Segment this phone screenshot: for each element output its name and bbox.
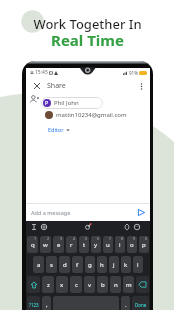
staticText: 7 <box>109 236 112 241</box>
staticText: Phil John <box>54 99 79 107</box>
button[interactable]: k <box>121 256 131 273</box>
staticText: y <box>94 241 98 249</box>
button[interactable]: j <box>109 256 119 273</box>
staticText: r <box>70 241 73 249</box>
button[interactable]: o <box>127 236 137 253</box>
button[interactable]: Add people <box>30 95 39 104</box>
button[interactable]: u <box>103 236 113 253</box>
button[interactable]: a <box>33 256 44 273</box>
staticText: Share <box>47 81 66 91</box>
staticText: 1 <box>34 236 37 241</box>
staticText: j <box>113 261 115 269</box>
button[interactable]: Send <box>136 207 147 218</box>
staticText: l <box>137 261 139 269</box>
button[interactable]: n <box>110 276 121 293</box>
staticText: k <box>124 261 128 269</box>
staticText: 91% <box>129 70 138 76</box>
button[interactable]: m <box>123 276 134 293</box>
staticText: 0 <box>145 236 148 241</box>
button[interactable]: q <box>27 236 38 253</box>
button[interactable]: x <box>56 276 68 293</box>
staticText: p <box>142 241 146 249</box>
button[interactable]: Text editing <box>28 221 39 232</box>
button[interactable]: f <box>72 256 83 273</box>
button[interactable]: t <box>79 236 89 253</box>
staticText: 2 <box>47 236 50 241</box>
button[interactable]: Editor <box>47 125 71 134</box>
staticText: P <box>45 100 49 107</box>
button[interactable]: Voice input <box>82 221 93 232</box>
staticText: . <box>125 301 127 309</box>
staticText: a <box>37 261 41 269</box>
staticText: g <box>88 261 92 269</box>
staticText: z <box>47 281 50 289</box>
button[interactable]: . <box>121 296 130 310</box>
button[interactable]: b <box>97 276 108 293</box>
staticText: 3 <box>60 236 63 241</box>
staticText: w <box>43 241 48 249</box>
button[interactable]: p <box>139 236 149 253</box>
staticText: t <box>83 241 86 249</box>
button[interactable]: w <box>40 236 51 253</box>
staticText: 4 <box>73 236 76 241</box>
staticText: mattin10234@gmail.com <box>56 111 127 119</box>
staticText: ?123 <box>29 302 39 308</box>
staticText: d <box>63 261 67 269</box>
button[interactable]: e <box>53 236 64 253</box>
staticText: c <box>75 281 78 289</box>
staticText: 15:45 <box>35 69 48 76</box>
staticText: 9 <box>133 236 136 241</box>
button[interactable]: More options <box>135 80 147 92</box>
staticText: Done <box>135 302 147 308</box>
staticText: 6 <box>97 236 100 241</box>
button[interactable]: i <box>115 236 125 253</box>
staticText: m <box>126 281 132 289</box>
staticText: Editor <box>48 126 64 133</box>
staticText: b <box>101 281 105 289</box>
button[interactable]: v <box>84 276 95 293</box>
button[interactable]: , <box>42 296 51 310</box>
button[interactable]: s <box>46 256 57 273</box>
button[interactable]: done <box>132 296 149 310</box>
staticText: , <box>46 301 48 309</box>
staticText: e <box>57 241 61 249</box>
staticText: Real Time <box>51 30 124 50</box>
staticText: v <box>88 281 92 289</box>
staticText: n <box>114 281 118 289</box>
button[interactable]: d <box>59 256 70 273</box>
staticText: s <box>50 261 53 269</box>
staticText: o <box>130 241 134 249</box>
button[interactable]: shift <box>27 276 40 293</box>
staticText: Add a message <box>31 209 71 216</box>
button[interactable]: h <box>97 256 107 273</box>
staticText: 5 <box>85 236 88 241</box>
button[interactable]: P <box>41 97 103 109</box>
button[interactable]: r <box>66 236 77 253</box>
staticText: f <box>76 261 79 269</box>
button[interactable]: y <box>91 236 101 253</box>
button[interactable]: Emoji <box>131 221 142 232</box>
button[interactable]: z <box>42 276 54 293</box>
staticText: x <box>60 281 64 289</box>
button[interactable]: Close <box>31 80 43 92</box>
button[interactable]: Stickers <box>121 221 132 232</box>
button[interactable]: c <box>70 276 82 293</box>
button[interactable]: l <box>133 256 143 273</box>
staticText: 8 <box>121 236 124 241</box>
staticText: Work Together In <box>33 15 142 33</box>
staticText: i <box>119 241 121 249</box>
button[interactable]: g <box>85 256 95 273</box>
button[interactable]: Settings <box>38 221 49 232</box>
staticText: q <box>31 241 35 249</box>
staticText: h <box>100 261 104 269</box>
button[interactable]: ?123 <box>27 296 40 310</box>
button[interactable]: del <box>136 276 149 293</box>
staticText: u <box>106 241 110 249</box>
